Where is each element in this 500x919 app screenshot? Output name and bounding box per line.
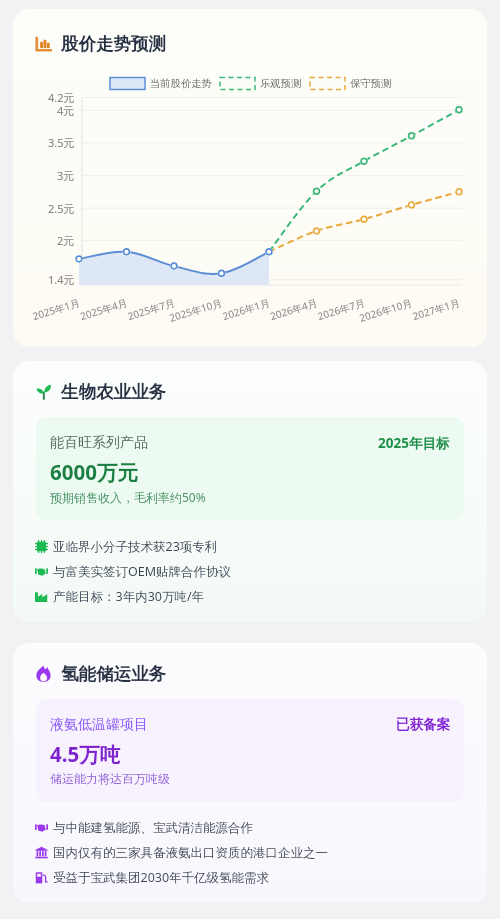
staticText: 受益于宝武集团2030年千亿级氢能需求	[53, 869, 270, 886]
staticText: 6000万元	[50, 458, 138, 486]
staticText: 2025年目标	[378, 434, 450, 452]
staticText: 预期销售收入，毛利率约50%	[50, 489, 206, 505]
staticText: 氢能储运业务	[61, 663, 166, 685]
staticText: 液氨低温罐项目	[50, 716, 148, 734]
staticText: 4.5万吨	[50, 740, 121, 768]
staticText: 产能目标：3年内30万吨/年	[53, 588, 205, 605]
staticText: 国内仅有的三家具备液氨出口资质的港口企业之一	[53, 845, 328, 861]
staticText: 储运能力将达百万吨级	[50, 771, 170, 786]
staticText: 已获备案	[396, 716, 450, 733]
staticText: 与中能建氢能源、宝武清洁能源合作	[53, 820, 253, 836]
staticText: 股价走势预测	[61, 33, 166, 55]
staticText: 生物农业业务	[61, 381, 166, 403]
staticText: 能百旺系列产品	[50, 434, 148, 452]
staticText: 与富美实签订OEM贴牌合作协议	[53, 563, 232, 580]
staticText: 亚临界小分子技术获23项专利	[53, 538, 218, 555]
